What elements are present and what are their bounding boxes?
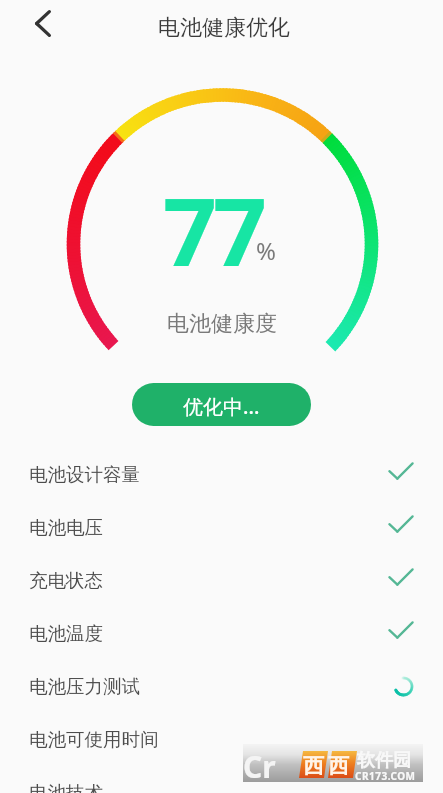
button[interactable]: Back [20,0,66,46]
button[interactable]: 电池技术 [0,766,443,793]
staticText: 西西 [301,753,351,779]
staticText: 7 [213,166,267,294]
staticText: 电池健康优化 [158,14,290,42]
staticText: 电池设计容量 [29,463,140,486]
staticText: Cr [243,746,276,784]
staticText: 电池可使用时间 [29,728,159,751]
staticText: 电池电压 [29,516,103,539]
staticText: 7 [163,166,217,294]
button[interactable]: 电池电压 [0,501,443,554]
button[interactable]: 优化中... [132,383,311,426]
button[interactable]: 电池可使用时间 [0,713,443,766]
staticText: 电池健康度 [167,310,277,338]
staticText: 软件园 [357,749,411,772]
button[interactable]: 电池压力测试 [0,660,443,713]
button[interactable]: 充电状态 [0,554,443,607]
staticText: % [256,234,276,267]
staticText: 电池温度 [29,622,103,645]
staticText: 电池技术 [29,781,103,793]
staticText: 电池压力测试 [29,675,140,698]
staticText: 充电状态 [29,569,103,592]
button[interactable]: 电池设计容量 [0,448,443,501]
button[interactable]: 电池温度 [0,607,443,660]
staticText: 优化中... [183,393,260,420]
staticText: CR173.COM [355,769,416,783]
